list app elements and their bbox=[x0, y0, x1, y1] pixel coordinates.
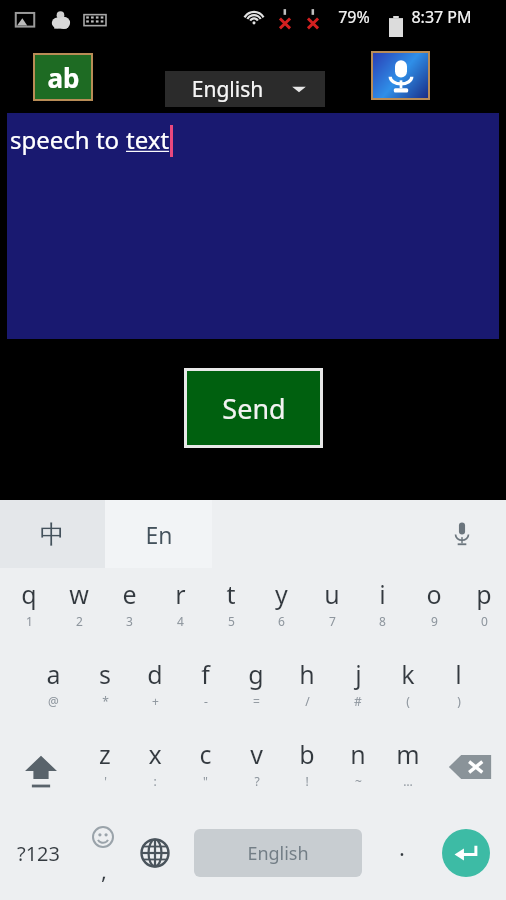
button[interactable]: Backspace bbox=[433, 731, 506, 811]
staticText: r bbox=[175, 577, 186, 611]
button[interactable]: y bbox=[256, 571, 307, 651]
button[interactable]: u bbox=[306, 571, 357, 651]
staticText: 1 bbox=[26, 613, 33, 629]
staticText: = bbox=[253, 693, 260, 709]
staticText: ( bbox=[406, 693, 410, 709]
staticText: En bbox=[145, 519, 173, 550]
staticText: 6 bbox=[278, 613, 285, 629]
staticText: Send bbox=[222, 390, 286, 427]
staticText: 5 bbox=[228, 613, 235, 629]
button[interactable]: q bbox=[3, 571, 54, 651]
staticText: English bbox=[165, 75, 290, 104]
button[interactable]: k bbox=[382, 651, 433, 731]
staticText: 7 bbox=[329, 613, 336, 629]
staticText: ! bbox=[305, 773, 309, 789]
staticText: English bbox=[247, 841, 309, 866]
button[interactable]: Send bbox=[187, 371, 320, 445]
button[interactable]: p bbox=[458, 571, 506, 651]
staticText: j bbox=[355, 657, 362, 691]
staticText: k bbox=[401, 657, 415, 691]
staticText: m bbox=[396, 737, 420, 771]
button[interactable]: Voice typing bbox=[440, 512, 484, 556]
button[interactable]: a bbox=[28, 651, 79, 731]
staticText: ? bbox=[254, 773, 260, 789]
button[interactable]: h bbox=[281, 651, 332, 731]
button[interactable]: j bbox=[332, 651, 383, 731]
staticText: speech to bbox=[10, 123, 126, 156]
staticText: 中 bbox=[40, 519, 65, 550]
button[interactable]: w bbox=[53, 571, 104, 651]
button[interactable]: z bbox=[79, 731, 130, 811]
staticText: 79% bbox=[338, 6, 370, 28]
staticText: ~ bbox=[355, 773, 362, 789]
staticText: h bbox=[299, 657, 315, 691]
button[interactable]: o bbox=[408, 571, 459, 651]
staticText: 2 bbox=[76, 613, 83, 629]
staticText: n bbox=[350, 737, 366, 771]
button[interactable]: Emoji and comma bbox=[76, 811, 130, 895]
button[interactable]: m bbox=[382, 731, 433, 811]
staticText: - bbox=[204, 693, 208, 709]
button[interactable]: e bbox=[104, 571, 155, 651]
button[interactable]: Change keyboard language bbox=[128, 811, 182, 895]
staticText: 0 bbox=[481, 613, 488, 629]
button[interactable]: b bbox=[281, 731, 332, 811]
button[interactable]: Enter bbox=[442, 829, 490, 877]
button[interactable]: l bbox=[433, 651, 484, 731]
staticText: x bbox=[148, 737, 162, 771]
staticText: ab bbox=[47, 60, 80, 95]
staticText: i bbox=[379, 577, 386, 611]
staticText: 8 bbox=[379, 613, 386, 629]
staticText: ' bbox=[104, 773, 107, 789]
staticText: v bbox=[250, 737, 263, 771]
button[interactable]: English bbox=[194, 829, 362, 877]
staticText: p bbox=[476, 577, 492, 611]
staticText: . bbox=[399, 832, 405, 862]
staticText: u bbox=[324, 577, 340, 611]
button[interactable]: f bbox=[180, 651, 231, 731]
button[interactable]: ?123 bbox=[0, 811, 76, 895]
button[interactable]: . bbox=[375, 811, 429, 895]
button[interactable]: n bbox=[332, 731, 383, 811]
button[interactable]: Shift bbox=[3, 731, 79, 811]
staticText: + bbox=[152, 693, 159, 709]
button[interactable]: English bbox=[165, 71, 325, 107]
staticText: b bbox=[299, 737, 315, 771]
staticText: d bbox=[147, 657, 163, 691]
staticText: * bbox=[102, 693, 109, 709]
staticText: 3 bbox=[126, 613, 133, 629]
button[interactable]: g bbox=[230, 651, 281, 731]
button[interactable]: Voice input bbox=[373, 53, 428, 98]
staticText: e bbox=[122, 577, 137, 611]
button[interactable]: Dictionary bbox=[35, 55, 91, 99]
staticText: / bbox=[305, 693, 310, 709]
staticText: text bbox=[126, 123, 170, 156]
button[interactable]: c bbox=[180, 731, 231, 811]
staticText: t bbox=[226, 577, 236, 611]
button[interactable]: En bbox=[105, 500, 212, 568]
staticText: g bbox=[248, 657, 264, 691]
staticText: … bbox=[403, 773, 413, 789]
button[interactable]: r bbox=[155, 571, 206, 651]
button[interactable]: x bbox=[129, 731, 180, 811]
button[interactable]: v bbox=[231, 731, 282, 811]
staticText: o bbox=[426, 577, 442, 611]
staticText: 9 bbox=[431, 613, 438, 629]
staticText: q bbox=[21, 577, 37, 611]
staticText: w bbox=[69, 577, 89, 611]
button[interactable]: 中 bbox=[0, 500, 105, 568]
button[interactable]: speech to bbox=[7, 113, 499, 339]
button[interactable]: i bbox=[357, 571, 408, 651]
staticText: , bbox=[99, 855, 109, 885]
button[interactable]: s bbox=[79, 651, 130, 731]
staticText: l bbox=[455, 657, 462, 691]
staticText: z bbox=[99, 737, 111, 771]
staticText: a bbox=[46, 657, 61, 691]
staticText: ?123 bbox=[17, 840, 60, 867]
staticText: : bbox=[153, 773, 157, 789]
staticText: " bbox=[203, 773, 208, 789]
button[interactable]: t bbox=[205, 571, 256, 651]
staticText: y bbox=[275, 577, 288, 611]
staticText: s bbox=[99, 657, 111, 691]
button[interactable]: d bbox=[129, 651, 180, 731]
